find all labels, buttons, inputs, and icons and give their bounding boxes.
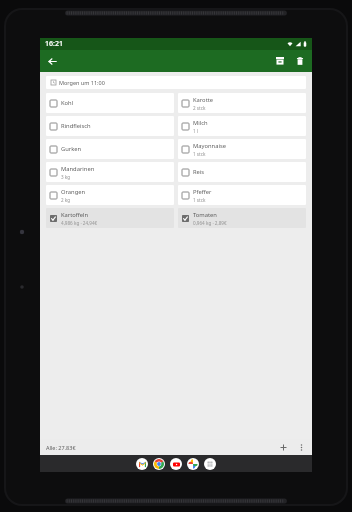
button[interactable]: Tomaten	[178, 208, 306, 228]
staticText: Kartoffeln	[61, 211, 89, 219]
button[interactable]: Orangen	[46, 185, 174, 205]
staticText: 1 stck	[193, 151, 206, 157]
button[interactable]: Karotte	[178, 93, 306, 113]
button[interactable]: Morgen um 11:00	[46, 76, 306, 89]
staticText: Reis	[193, 168, 205, 176]
button[interactable]: Add item	[277, 441, 290, 454]
staticText: 0,964 kg · 2,89€	[193, 220, 227, 226]
button[interactable]: Kartoffeln	[46, 208, 174, 228]
button[interactable]: Milch	[178, 116, 306, 136]
staticText: Mayonnaise	[193, 142, 226, 150]
staticText: Mandarinen	[61, 165, 95, 173]
staticText: 3 kg	[61, 174, 71, 180]
staticText: Milch	[193, 119, 208, 127]
button[interactable]: All apps	[204, 458, 216, 470]
button[interactable]: YouTube	[170, 458, 182, 470]
staticText: Alle: 27.83€	[46, 444, 76, 451]
button[interactable]: Reis	[178, 162, 306, 182]
button[interactable]: Mayonnaise	[178, 139, 306, 159]
staticText: Morgen um 11:00	[59, 79, 105, 86]
staticText: 1 stck	[193, 197, 206, 203]
button[interactable]: More options	[295, 441, 308, 454]
button[interactable]: Gmail	[136, 458, 148, 470]
button[interactable]: Pfeffer	[178, 185, 306, 205]
staticText: 16:21	[45, 39, 63, 49]
staticText: 2 kg	[61, 197, 71, 203]
button[interactable]: Rindfleisch	[46, 116, 174, 136]
button[interactable]: Photos	[187, 458, 199, 470]
button[interactable]: Delete	[292, 53, 308, 69]
staticText: Rindfleisch	[61, 122, 91, 130]
button[interactable]: Gurken	[46, 139, 174, 159]
staticText: 2 stck	[193, 105, 206, 111]
staticText: Pfeffer	[193, 188, 212, 196]
button[interactable]: Chrome	[153, 458, 165, 470]
staticText: Karotte	[193, 96, 214, 104]
button[interactable]: Mandarinen	[46, 162, 174, 182]
staticText: Kohl	[61, 99, 74, 107]
staticText: 1 l	[193, 128, 199, 134]
staticText: Tomaten	[193, 211, 217, 219]
button[interactable]: Archive	[272, 53, 288, 69]
staticText: 4,986 kg · 24,94€	[61, 220, 98, 226]
button[interactable]: Kohl	[46, 93, 174, 113]
staticText: Orangen	[61, 188, 86, 196]
button[interactable]: Back	[44, 53, 60, 69]
staticText: Gurken	[61, 145, 82, 153]
